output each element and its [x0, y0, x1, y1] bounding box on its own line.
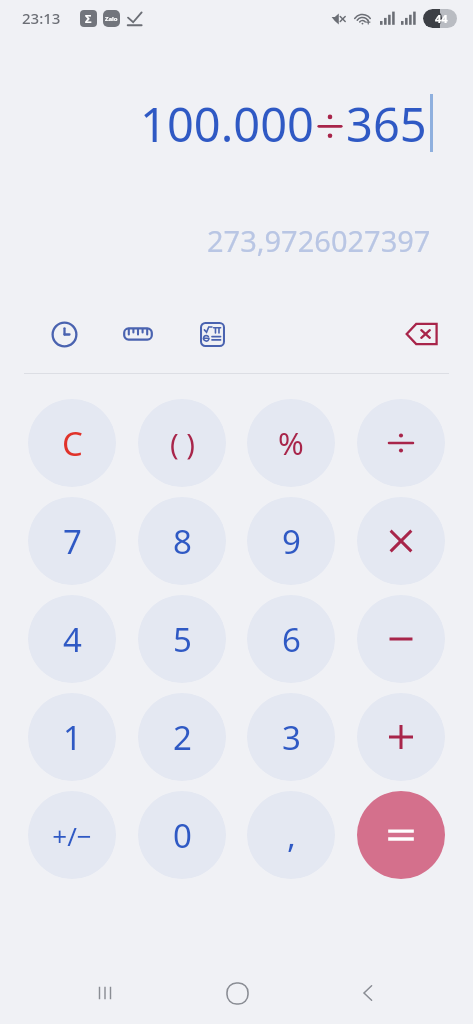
staticText: Zalo	[105, 15, 118, 23]
staticText: 273,9726027397	[207, 221, 431, 260]
button[interactable]: Equals	[357, 791, 445, 879]
button[interactable]: Back	[342, 967, 394, 1019]
button[interactable]: Scientific	[190, 312, 234, 356]
staticText: 100.000	[140, 92, 314, 154]
button[interactable]: 9	[247, 497, 335, 585]
staticText: 44	[435, 11, 448, 26]
staticText: 6	[282, 617, 301, 662]
button[interactable]: Home	[211, 967, 263, 1019]
button[interactable]: 1	[28, 693, 116, 781]
button[interactable]: Divide	[357, 399, 445, 487]
staticText: +/−	[52, 818, 92, 853]
staticText: 3	[282, 715, 301, 760]
button[interactable]: Recents	[79, 967, 131, 1019]
staticText: 23:13	[22, 8, 61, 28]
staticText: 1	[63, 715, 82, 760]
button[interactable]: C	[28, 399, 116, 487]
button[interactable]: 2	[138, 693, 226, 781]
staticText: 0	[173, 813, 192, 858]
button[interactable]: Backspace	[401, 312, 445, 356]
staticText: Σ	[85, 11, 92, 26]
staticText: 4	[63, 617, 82, 662]
button[interactable]: 8	[138, 497, 226, 585]
staticText: C	[62, 421, 83, 466]
button[interactable]: History	[42, 312, 86, 356]
button[interactable]: Multiply	[357, 497, 445, 585]
staticText: %	[278, 422, 304, 464]
button[interactable]: 6	[247, 595, 335, 683]
button[interactable]: %	[247, 399, 335, 487]
button[interactable]: +/−	[28, 791, 116, 879]
staticText: 5	[173, 617, 192, 662]
button[interactable]: ,	[247, 791, 335, 879]
staticText: 9	[282, 519, 301, 564]
button[interactable]: 5	[138, 595, 226, 683]
staticText: ,	[287, 813, 296, 858]
button[interactable]: Minus	[357, 595, 445, 683]
button[interactable]: 4	[28, 595, 116, 683]
button[interactable]: 0	[138, 791, 226, 879]
staticText: 7	[63, 519, 82, 564]
staticText: 365	[346, 92, 427, 154]
button[interactable]: Unit converter	[116, 312, 160, 356]
button[interactable]: Plus	[357, 693, 445, 781]
button[interactable]: 3	[247, 693, 335, 781]
staticText: 8	[173, 519, 192, 564]
staticText: 2	[173, 715, 192, 760]
button[interactable]: ( )	[138, 399, 226, 487]
staticText: ( )	[170, 424, 195, 463]
button[interactable]: 7	[28, 497, 116, 585]
